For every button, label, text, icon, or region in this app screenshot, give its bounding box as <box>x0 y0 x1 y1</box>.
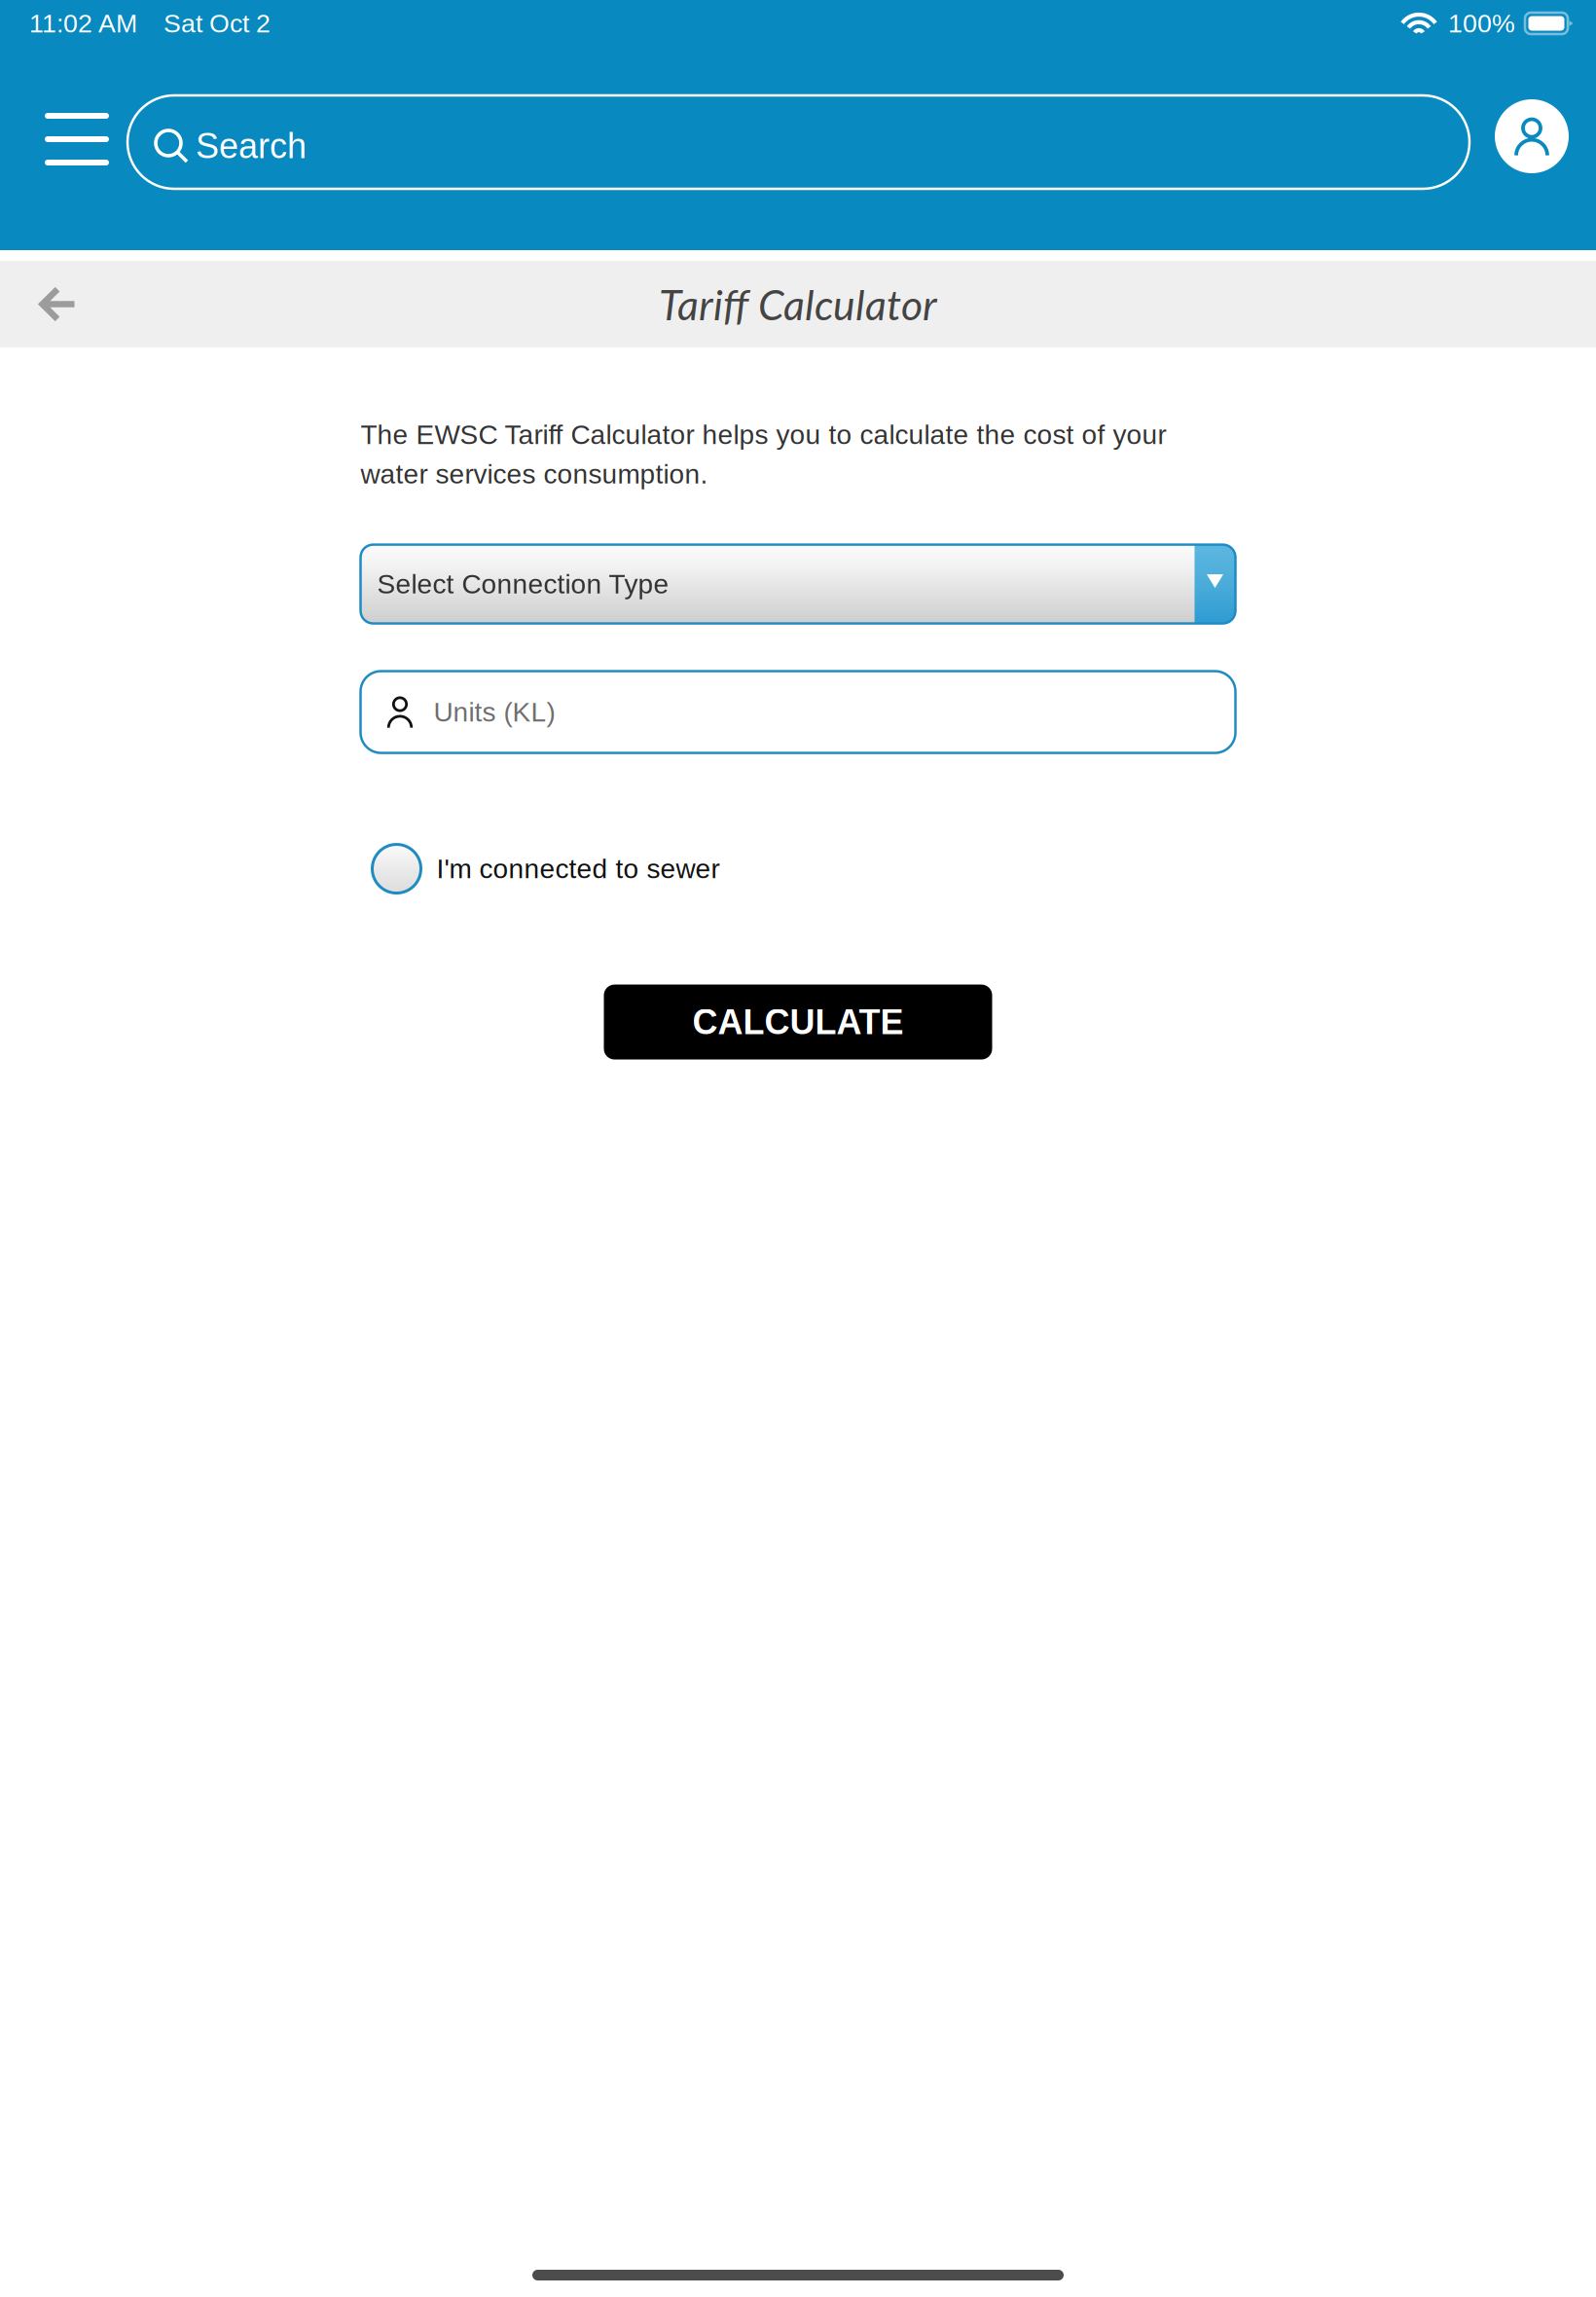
staticText: 11:02 AM <box>29 9 137 38</box>
button[interactable]: Units (KL) <box>361 671 1235 753</box>
staticText: Sat Oct 2 <box>163 9 271 38</box>
staticText: I'm connected to sewer <box>436 853 720 884</box>
staticText: Search <box>196 126 307 166</box>
button[interactable]: I'm connected to sewer <box>361 842 1235 895</box>
button[interactable]: CALCULATE <box>604 985 992 1060</box>
button[interactable]: Back <box>0 261 117 347</box>
button[interactable]: Menu <box>45 95 109 189</box>
button[interactable]: Search <box>127 95 1469 189</box>
staticText: Tariff Calculator <box>659 279 937 329</box>
staticText: 100% <box>1448 9 1515 38</box>
staticText: The EWSC Tariff Calculator helps you to … <box>361 419 1166 489</box>
button[interactable]: Account <box>1495 95 1569 189</box>
staticText: Units (KL) <box>434 697 555 727</box>
staticText: Select Connection Type <box>377 569 669 599</box>
button[interactable]: Select Connection Type <box>361 545 1235 623</box>
staticText: CALCULATE <box>692 1003 904 1042</box>
